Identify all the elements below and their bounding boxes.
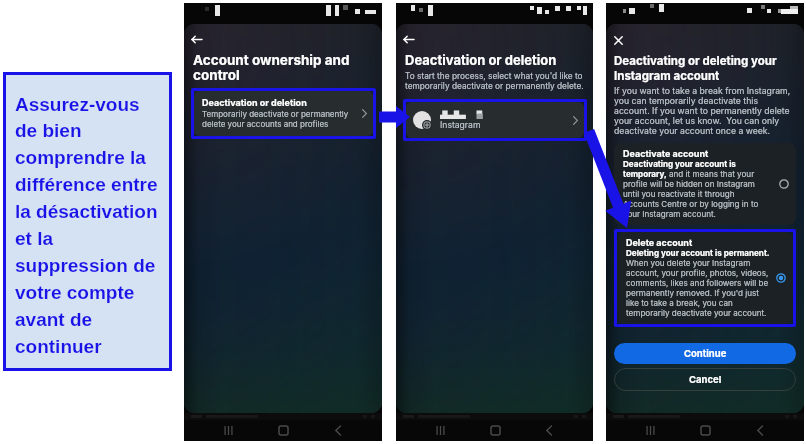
button[interactable]: Back [749,420,771,441]
button[interactable]: Delete account [617,232,793,324]
button[interactable]: Instagram [406,102,584,138]
staticText: Continue [684,348,727,359]
staticText: Account ownership and control [193,52,376,83]
button[interactable]: Recents [429,420,451,441]
staticText: Deactivation or deletion [405,52,557,68]
staticText: Delete account [626,237,693,248]
button[interactable]: Close [614,33,629,48]
staticText: Temporarily deactivate or permanently de… [202,109,356,129]
staticText: Deactivation or deletion [202,97,307,108]
staticText: Cancel [689,374,722,385]
button[interactable]: Recents [217,420,239,441]
button[interactable]: Recents [639,420,661,441]
button[interactable]: Cancel [614,368,796,391]
staticText: Deactivating your account is temporary, … [623,159,771,219]
button[interactable]: Home [484,420,506,441]
staticText: Instagram [440,120,481,130]
button[interactable]: Back [327,420,349,441]
button[interactable]: Back [538,420,560,441]
staticText: Deleting your account is permanent. When… [626,248,774,318]
staticText: Deactivate account [623,148,709,159]
button[interactable]: Deactivation or deletion [194,91,373,136]
staticText: If you want to take a break from Instagr… [614,86,795,136]
button[interactable]: Back [403,30,421,48]
button[interactable]: Home [694,420,716,441]
button[interactable]: Deactivate account [614,143,796,225]
button[interactable]: Back [191,30,209,48]
button[interactable]: Home [272,420,294,441]
staticText: To start the process, select what you'd … [405,71,585,91]
staticText: Assurez-vous de bien comprendre la diffé… [15,94,164,357]
staticText: Deactivating or deleting your Instagram … [614,54,796,83]
button[interactable]: Continue [614,343,796,364]
